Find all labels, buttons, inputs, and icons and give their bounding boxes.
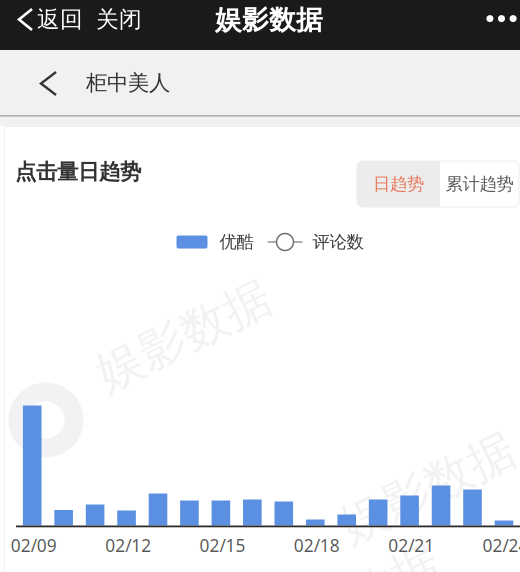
- staticText: 日趋势: [373, 173, 424, 195]
- staticText: 娱影数据: [334, 459, 520, 517]
- staticText: 评论数: [312, 231, 363, 253]
- staticText: 02/09: [11, 534, 57, 557]
- staticText: 02/15: [199, 534, 245, 557]
- staticText: 娱影数据: [258, 571, 446, 572]
- button[interactable]: 关闭: [87, 0, 151, 40]
- staticText: 娱影数据: [90, 307, 278, 365]
- staticText: 02/12: [105, 534, 151, 557]
- staticText: 返回: [37, 6, 83, 33]
- staticText: 02/21: [388, 534, 434, 557]
- staticText: 关闭: [96, 6, 142, 33]
- staticText: 02/24: [483, 534, 520, 557]
- button[interactable]: 累计趋势: [440, 161, 519, 207]
- staticText: 点击量日趋势: [15, 159, 141, 185]
- staticText: 柜中美人: [86, 70, 170, 96]
- staticText: 娱影数据: [215, 4, 323, 36]
- staticText: 优酷: [219, 231, 253, 253]
- button[interactable]: 返回: [5, 0, 91, 40]
- button[interactable]: 柜中美人: [0, 50, 520, 115]
- staticText: 02/18: [294, 534, 340, 557]
- button[interactable]: More options: [478, 7, 520, 30]
- button[interactable]: 日趋势: [357, 161, 440, 207]
- staticText: 累计趋势: [445, 173, 513, 195]
